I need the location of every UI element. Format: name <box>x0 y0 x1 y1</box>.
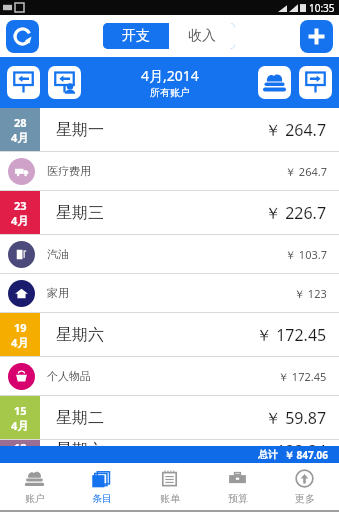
staticText: ￥ 103.7 <box>285 247 327 262</box>
staticText: 4月 <box>11 130 29 145</box>
button[interactable]: 账单 <box>136 463 203 510</box>
staticText: ￥ 123.34 <box>256 440 327 446</box>
staticText: 星期六 <box>56 325 256 345</box>
staticText: ￥ 226.7 <box>265 202 327 224</box>
staticText: 家用 <box>47 286 294 300</box>
staticText: 收入 <box>188 27 216 45</box>
button[interactable]: 23 <box>0 191 339 235</box>
staticText: ￥ 264.7 <box>285 164 327 179</box>
staticText: 开支 <box>122 27 150 45</box>
staticText: 15 <box>14 403 27 418</box>
staticText: ￥ 123 <box>294 286 327 301</box>
button[interactable]: Accounts <box>258 66 291 99</box>
staticText: 10:35 <box>309 1 335 15</box>
staticText: ￥ 59.87 <box>265 407 327 429</box>
button[interactable]: Next period <box>299 66 332 99</box>
button[interactable]: Add <box>300 20 333 53</box>
button[interactable]: 汽油 <box>0 235 339 274</box>
staticText: ￥ 847.06 <box>284 448 329 462</box>
button[interactable]: 医疗费用 <box>0 152 339 191</box>
staticText: 条目 <box>92 492 112 505</box>
staticText: 账单 <box>160 492 180 505</box>
button[interactable]: 28 <box>0 108 339 152</box>
button[interactable]: 家用 <box>0 274 339 313</box>
staticText: ￥ 172.45 <box>256 324 327 346</box>
staticText: 星期二 <box>56 408 265 428</box>
button[interactable]: 15 <box>0 396 339 440</box>
staticText: 4月,2014 <box>141 66 199 85</box>
staticText: 个人物品 <box>47 369 278 383</box>
button[interactable]: 个人物品 <box>0 357 339 396</box>
staticText: 23 <box>14 198 27 213</box>
staticText: 汽油 <box>47 247 285 261</box>
staticText: 4月 <box>11 418 29 433</box>
button[interactable]: Previous account <box>48 66 81 99</box>
staticText: 星期三 <box>56 203 265 223</box>
staticText: 预算 <box>228 492 248 505</box>
button[interactable]: 更多 <box>271 463 338 510</box>
staticText: 所有账户 <box>150 86 190 99</box>
button[interactable]: 条目 <box>68 463 135 510</box>
staticText: 12 <box>14 440 27 446</box>
staticText: 星期一 <box>56 120 265 140</box>
staticText: 19 <box>14 320 27 335</box>
button[interactable]: Refresh <box>6 20 39 53</box>
staticText: 总计 <box>258 448 278 461</box>
staticText: 4月 <box>11 213 29 228</box>
button[interactable]: 账户 <box>1 463 68 510</box>
staticText: 星期六 <box>56 440 256 446</box>
button[interactable]: 预算 <box>204 463 271 510</box>
staticText: 医疗费用 <box>47 164 285 178</box>
button[interactable]: 12 <box>0 440 339 446</box>
staticText: 更多 <box>295 492 315 505</box>
button[interactable]: 开支 <box>103 23 169 49</box>
button[interactable]: 收入 <box>169 23 235 49</box>
button[interactable]: 19 <box>0 313 339 357</box>
staticText: 28 <box>14 115 27 130</box>
button[interactable]: Previous period <box>7 66 40 99</box>
staticText: 4月 <box>11 335 29 350</box>
staticText: ￥ 172.45 <box>278 369 327 384</box>
staticText: ￥ 264.7 <box>265 119 327 141</box>
staticText: 账户 <box>25 492 45 505</box>
